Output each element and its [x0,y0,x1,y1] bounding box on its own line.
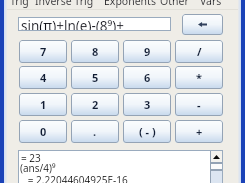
button[interactable]: 9 [123,40,171,63]
button[interactable]: ( - ) [123,120,171,143]
button[interactable]: 7 [19,40,67,63]
button[interactable]: 8 [71,40,119,63]
staticText: Vars [200,0,222,8]
staticText: Other [160,0,189,8]
button[interactable]: sin(π)+ln(e)-(8⁹)+ [18,17,171,31]
staticText: Trig [10,0,29,8]
button[interactable]: 6 [123,66,171,89]
staticText: = 23 [21,151,41,165]
staticText: + [196,124,203,139]
button[interactable]: 4 [19,66,67,89]
button[interactable]: 1 [19,93,67,116]
staticText: 0 [40,124,47,139]
staticText: 9 [144,44,151,59]
staticText: 8 [92,44,99,59]
button[interactable]: Vars [199,0,223,8]
button[interactable]: / [175,40,223,63]
staticText: . [93,124,97,139]
button[interactable]: Exponents [103,0,157,8]
staticText: 5 [92,70,99,85]
staticText: 7 [40,44,47,59]
button[interactable]: Other [159,0,190,8]
button[interactable]: Inverse Trig [34,0,95,8]
button[interactable]: 3 [123,93,171,116]
button[interactable] [210,170,223,183]
button[interactable]: . [71,120,119,143]
button[interactable]: * [175,66,223,89]
staticText: Exponents [104,0,156,8]
button[interactable]: Trig [9,0,30,8]
staticText: 1 [40,97,47,112]
button[interactable]: 2 [71,93,119,116]
staticText: sin(π)+ln(e)-(8⁹)+ [21,17,125,31]
button[interactable]: + [175,120,223,143]
staticText: 4 [40,70,47,85]
staticText: = 2.22044604925E-16 [20,173,128,183]
button[interactable]: 5 [71,66,119,89]
staticText: - [197,97,201,112]
button[interactable]: Scroll up [210,150,223,163]
button[interactable]: 0 [19,120,67,143]
staticText: Inverse Trig [35,0,94,8]
staticText: 2 [92,97,99,112]
staticText: * [196,70,202,85]
button[interactable]: Backspace [182,14,223,35]
staticText: 3 [144,97,151,112]
staticText: / [197,44,202,59]
staticText: (ans/4)⁹ [20,161,56,175]
button[interactable]: - [175,93,223,116]
staticText: 6 [144,70,151,85]
staticText: ( - ) [139,124,156,139]
